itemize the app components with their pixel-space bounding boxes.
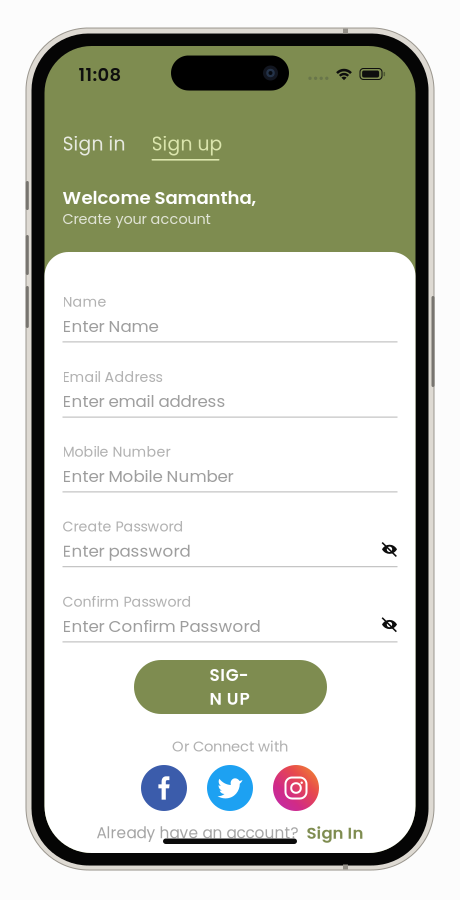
staticText: Create Password [62,517,183,536]
staticText: Enter Name [62,314,158,338]
button[interactable]: Continue with Instagram [273,765,319,811]
staticText: Sign In [306,821,363,844]
staticText: Email Address [62,367,162,387]
button[interactable]: SIGN UP [134,660,327,714]
button[interactable]: Continue with Facebook [141,765,187,811]
staticText: Name [62,292,106,312]
staticText: Confirm Password [62,592,191,612]
staticText: Mobile Number [62,442,170,462]
button[interactable]: Sign up [151,129,222,161]
staticText: Enter password [62,539,190,562]
staticText: Enter Confirm Password [62,614,260,638]
button[interactable]: Show password [375,535,403,563]
button[interactable]: Continue with Twitter [207,765,253,811]
staticText: Welcome Samantha, [62,185,256,210]
button[interactable]: Sign in [62,129,125,159]
staticText: Create your account [62,209,210,229]
staticText: Enter email address [62,390,225,413]
staticText: 11:08 [78,62,121,87]
staticText: Already have an account? [96,822,298,844]
button[interactable]: Already have an account? [44,822,415,844]
staticText: Enter Mobile Number [62,464,233,488]
staticText: Or Connect with [172,736,288,756]
button[interactable]: Show password [375,610,403,638]
staticText: Sign in [62,131,125,157]
staticText: SIGN UP [209,663,251,710]
staticText: Sign up [151,131,222,157]
